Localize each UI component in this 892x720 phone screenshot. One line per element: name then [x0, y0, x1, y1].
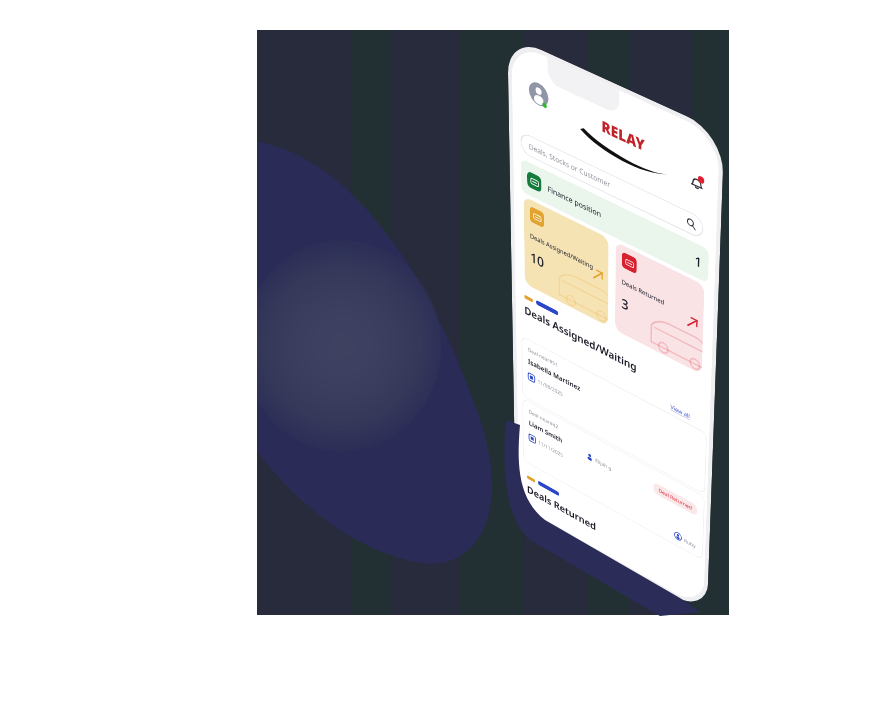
- staticText: Deal Returned: [658, 487, 692, 512]
- button[interactable]: Deals Returned: [615, 241, 705, 375]
- staticText: Deals Assigned/Waiting: [524, 302, 637, 375]
- staticText: Isabella Martinez: [528, 356, 581, 394]
- staticText: 3: [621, 293, 629, 315]
- staticText: 1: [694, 251, 702, 272]
- button[interactable]: Profile: [529, 79, 548, 110]
- staticText: Ruby: [684, 537, 696, 550]
- button[interactable]: Deal near#51: [521, 335, 707, 495]
- button[interactable]: Deals Assigned/Waiting: [523, 196, 609, 326]
- button[interactable]: Deals, Stocks or Customer: [520, 131, 703, 240]
- button[interactable]: View all: [670, 403, 690, 421]
- staticText: Deals Returned: [527, 482, 596, 534]
- button[interactable]: Notifications: [688, 169, 706, 195]
- staticText: 11/11/2025: [538, 439, 563, 459]
- staticText: 10: [530, 247, 545, 272]
- staticText: Deals, Stocks or Customer: [529, 141, 611, 190]
- staticText: RELAY: [601, 115, 645, 156]
- staticText: Deals Returned: [622, 277, 691, 320]
- staticText: Deals Assigned/Waiting: [530, 231, 597, 273]
- button[interactable]: Deal near#42: [522, 398, 705, 560]
- staticText: Elijah g: [595, 457, 611, 472]
- button[interactable]: Finance position: [521, 158, 709, 283]
- staticText: Deal near#51: [528, 346, 558, 369]
- staticText: Finance position: [547, 183, 602, 219]
- staticText: Deal near#42: [529, 408, 559, 431]
- staticText: Liam Smith: [529, 418, 562, 445]
- staticText: 11/08/2025: [538, 377, 563, 398]
